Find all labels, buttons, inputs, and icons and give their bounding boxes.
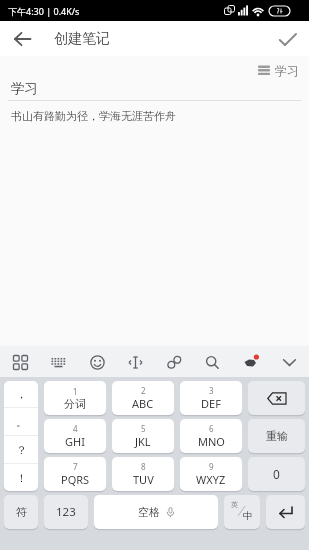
button[interactable]: 8 [112, 457, 174, 491]
button[interactable] [239, 350, 263, 374]
staticText: 。 [16, 415, 27, 429]
button[interactable]: 3 [180, 381, 242, 415]
button[interactable] [8, 350, 32, 374]
staticText: 重输 [266, 429, 288, 443]
staticText: 5 [141, 423, 146, 434]
button[interactable]: 空格 [94, 495, 218, 529]
staticText: 学习 [275, 63, 299, 78]
button[interactable] [123, 350, 147, 374]
button[interactable] [85, 350, 109, 374]
staticText: 中 [243, 510, 253, 522]
button[interactable]: 4 [44, 419, 106, 453]
button[interactable]: 2 [112, 381, 174, 415]
staticText: 符 [16, 505, 27, 519]
staticText: PQRS [61, 472, 90, 487]
button[interactable] [162, 350, 186, 374]
staticText: 英 [231, 500, 238, 509]
staticText: WXYZ [196, 472, 226, 487]
staticText: TUV [133, 472, 154, 487]
staticText: 1 [73, 386, 78, 397]
staticText: 分词 [64, 397, 86, 411]
staticText: ， [16, 387, 27, 401]
button[interactable]: 5 [112, 419, 174, 453]
button[interactable] [266, 495, 305, 529]
staticText: 123 [56, 504, 76, 520]
staticText: 学习 [11, 80, 38, 97]
staticText: 7 [73, 461, 78, 472]
staticText: ？ [16, 443, 27, 457]
staticText: GHI [65, 434, 85, 449]
staticText: JKL [135, 434, 151, 449]
button[interactable] [273, 24, 303, 54]
button[interactable]: ？ [4, 436, 38, 463]
button[interactable] [277, 350, 301, 374]
button[interactable]: 重输 [248, 419, 305, 453]
button[interactable]: 7 [44, 457, 106, 491]
staticText: ABC [132, 396, 154, 411]
staticText: 3 [209, 385, 214, 396]
staticText: 创建笔记 [54, 30, 110, 48]
staticText: 8 [141, 461, 146, 472]
staticText: 下午4:30 | 0.4K/s [8, 5, 80, 17]
button[interactable]: 符 [4, 495, 38, 529]
staticText: 6 [209, 423, 214, 434]
button[interactable]: 。 [4, 408, 38, 435]
staticText: ！ [16, 471, 27, 485]
button[interactable] [200, 350, 224, 374]
button[interactable]: 英 [224, 495, 260, 529]
staticText: 2 [141, 385, 146, 396]
staticText: 0 [273, 466, 280, 482]
button[interactable]: 0 [248, 457, 305, 491]
button[interactable]: 学习 [258, 58, 299, 82]
button[interactable]: 123 [44, 495, 88, 529]
button[interactable]: ， [4, 381, 38, 407]
staticText: 9 [209, 461, 214, 472]
staticText: DEF [201, 396, 221, 411]
button[interactable] [6, 23, 38, 55]
button[interactable]: ！ [4, 464, 38, 491]
button[interactable]: 6 [180, 419, 242, 453]
button[interactable] [46, 350, 70, 374]
button[interactable]: 9 [180, 457, 242, 491]
staticText: 书山有路勤为径，学海无涯苦作舟 [11, 109, 176, 123]
staticText: 4 [73, 423, 78, 434]
button[interactable] [248, 381, 305, 415]
staticText: MNO [198, 434, 225, 449]
staticText: 空格 [138, 505, 160, 519]
button[interactable]: 1 [44, 381, 106, 415]
